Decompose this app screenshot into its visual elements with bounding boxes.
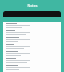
- button[interactable]: [3, 29, 61, 36]
- staticText: Notes: [27, 3, 38, 8]
- button[interactable]: [3, 50, 61, 57]
- button[interactable]: [3, 36, 61, 43]
- button[interactable]: [3, 57, 61, 64]
- button[interactable]: [3, 22, 61, 29]
- button[interactable]: [3, 64, 61, 71]
- button[interactable]: [3, 43, 61, 50]
